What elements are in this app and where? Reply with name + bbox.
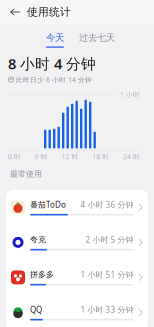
staticText: 1 小时 xyxy=(120,90,140,99)
staticText: 今天 xyxy=(46,32,64,43)
staticText: 最常使用 xyxy=(10,169,42,179)
staticText: 4 小时 36 分钟 xyxy=(80,199,133,210)
staticText: 0 时 xyxy=(8,152,21,161)
staticText: 1 小时 51 分钟 xyxy=(80,269,133,280)
button[interactable]: 拼多多 xyxy=(6,260,148,295)
staticText: 番茄ToDo xyxy=(30,199,66,210)
staticText: 18 时 xyxy=(92,152,109,161)
button[interactable]: 夸克 xyxy=(6,225,148,260)
staticText: 8 小时 4 分钟 xyxy=(8,54,96,73)
button[interactable]: QQ xyxy=(6,295,148,327)
staticText: 使用统计 xyxy=(27,5,71,18)
staticText: 6 时 xyxy=(35,152,48,161)
button[interactable]: 今天 xyxy=(44,32,66,48)
staticText: 2 小时 5 分钟 xyxy=(85,234,133,245)
staticText: QQ xyxy=(30,304,42,315)
button[interactable]: Back xyxy=(0,4,27,19)
staticText: 过去七天 xyxy=(79,32,115,43)
staticText: 比昨日少 6 小时 14 分钟 xyxy=(16,75,92,84)
staticText: 夸克 xyxy=(30,235,46,244)
staticText: 1 小时 33 分钟 xyxy=(80,304,133,315)
staticText: 拼多多 xyxy=(30,270,54,279)
button[interactable]: 过去七天 xyxy=(77,32,117,48)
staticText: 12 时 xyxy=(61,152,78,161)
staticText: 24 时 xyxy=(123,152,140,161)
button[interactable]: 番茄ToDo xyxy=(6,190,148,225)
